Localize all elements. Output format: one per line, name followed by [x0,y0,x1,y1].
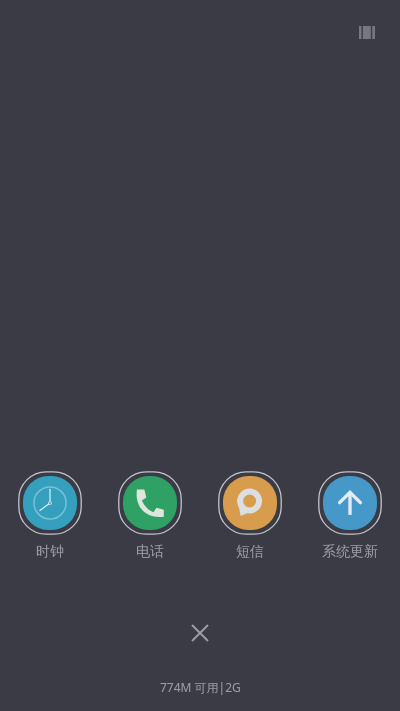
button[interactable]: 电话 [100,471,200,561]
button[interactable]: 系统更新 [300,471,400,561]
staticText: 系统更新 [322,543,378,561]
staticText: 774M 可用|2G [160,679,241,695]
button[interactable]: Recent apps [352,17,382,47]
staticText: 短信 [236,543,264,561]
button[interactable]: 短信 [200,471,300,561]
staticText: 电话 [136,543,164,561]
button[interactable]: 时钟 [0,471,100,561]
staticText: 时钟 [36,543,64,561]
button[interactable]: Close all apps [180,613,220,653]
